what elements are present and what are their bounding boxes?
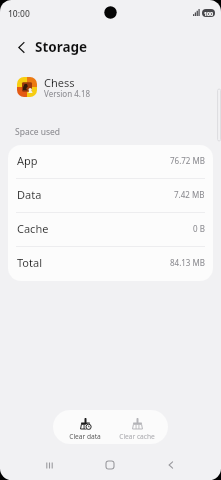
button[interactable]: Total (8, 247, 213, 281)
button[interactable]: App (8, 145, 213, 179)
button[interactable]: Back (9, 35, 33, 59)
staticText: 84.13 MB (170, 257, 205, 268)
staticText: Cache (17, 221, 49, 236)
staticText: Storage (35, 38, 88, 56)
staticText: Total (17, 255, 42, 270)
staticText: Clear data (69, 432, 101, 441)
button[interactable]: Recents (38, 450, 60, 480)
button[interactable]: Back (160, 450, 182, 480)
staticText: Chess (44, 75, 75, 90)
staticText: 0 B (193, 223, 205, 234)
button[interactable]: Clear data (59, 410, 111, 444)
staticText: App (17, 153, 38, 168)
staticText: 76.72 MB (170, 155, 205, 166)
button[interactable]: Home (99, 450, 121, 480)
staticText: 7.42 MB (174, 189, 205, 200)
staticText: 10:00 (8, 8, 30, 20)
staticText: 100 (204, 10, 213, 17)
button[interactable]: Cache (8, 213, 213, 247)
staticText: Space used (15, 126, 61, 138)
staticText: Version 4.18 (44, 88, 91, 99)
button[interactable]: Data (8, 179, 213, 213)
staticText: Clear cache (119, 432, 155, 441)
staticText: Data (17, 187, 42, 202)
button[interactable]: Clear cache (111, 410, 163, 444)
